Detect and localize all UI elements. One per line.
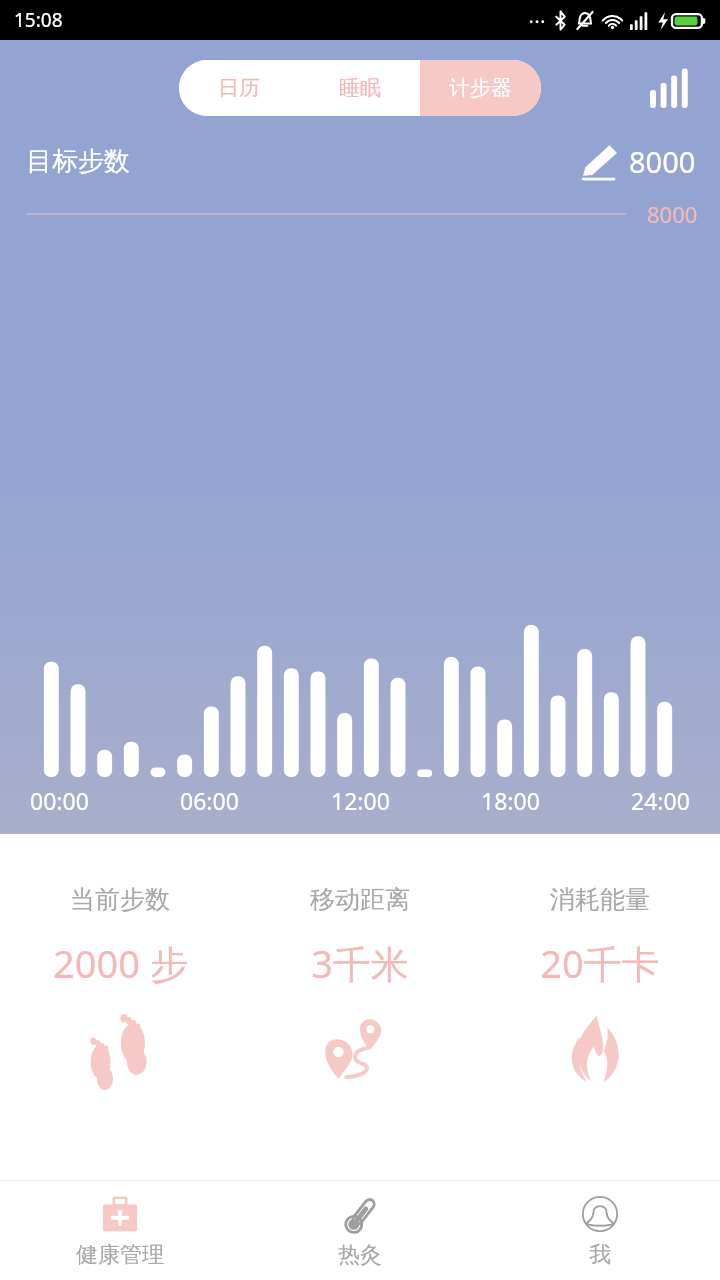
button[interactable]: 移动距离 — [240, 884, 480, 1180]
staticText: 00:00 — [30, 785, 89, 816]
button[interactable]: 消耗能量 — [480, 884, 720, 1180]
button[interactable]: 健康管理 — [0, 1181, 240, 1280]
staticText: 2000 步 — [53, 937, 188, 989]
other: Edit goal — [579, 143, 619, 181]
staticText: 12:00 — [331, 785, 390, 816]
button[interactable]: Statistics — [646, 62, 698, 114]
staticText: 06:00 — [180, 785, 239, 816]
staticText: 24:00 — [631, 785, 690, 816]
staticText: 移动距离 — [310, 884, 410, 915]
staticText: 我 — [589, 1241, 611, 1269]
staticText: 热灸 — [338, 1241, 382, 1269]
staticText: 睡眠 — [339, 75, 381, 101]
button[interactable]: 睡眠 — [299, 60, 420, 116]
staticText: 8000 — [629, 142, 696, 181]
staticText: 计步器 — [449, 75, 512, 101]
staticText: 18:00 — [481, 785, 540, 816]
staticText: 当前步数 — [70, 884, 170, 915]
staticText: 3千米 — [311, 937, 409, 989]
button[interactable]: 当前步数 — [0, 884, 240, 1180]
staticText: 20千卡 — [540, 937, 660, 989]
button[interactable]: 热灸 — [240, 1181, 480, 1280]
staticText: 健康管理 — [76, 1241, 164, 1269]
button[interactable]: 日历 — [179, 60, 299, 116]
button[interactable]: 计步器 — [420, 60, 541, 116]
staticText: 日历 — [218, 75, 260, 101]
staticText: 消耗能量 — [550, 884, 650, 915]
staticText: 15:08 — [14, 7, 63, 33]
staticText: 目标步数 — [26, 145, 130, 178]
button[interactable]: Edit goal — [579, 142, 696, 181]
button[interactable]: 我 — [480, 1181, 720, 1280]
staticText: 8000 — [647, 199, 698, 229]
